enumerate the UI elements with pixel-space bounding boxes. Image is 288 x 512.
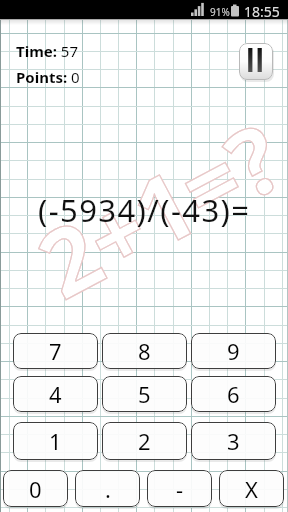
staticText: 3 — [227, 426, 240, 456]
staticText: Time: 57 — [16, 41, 78, 61]
button[interactable] — [239, 43, 273, 80]
button[interactable]: 1 — [13, 422, 98, 460]
staticText: 9 — [227, 336, 240, 366]
button[interactable]: 7 — [13, 333, 98, 369]
staticText: 2+1=? — [16, 93, 288, 326]
button[interactable]: 0 — [3, 470, 68, 507]
staticText: 4 — [49, 379, 62, 409]
button[interactable]: . — [75, 470, 140, 507]
staticText: Points: 0 — [16, 67, 80, 87]
button[interactable]: - — [147, 470, 212, 507]
staticText: . — [105, 474, 111, 504]
staticText: (-5934)/(-43)= — [38, 189, 251, 229]
staticText: 18:55 — [244, 2, 280, 21]
staticText: 2 — [138, 426, 151, 456]
staticText: - — [176, 474, 184, 504]
button[interactable]: X — [219, 470, 284, 507]
staticText: 5 — [138, 379, 151, 409]
staticText: 1 — [49, 426, 62, 456]
staticText: 2+1=? — [16, 93, 288, 326]
button[interactable]: 6 — [191, 376, 276, 412]
button[interactable]: 3 — [191, 422, 276, 460]
button[interactable]: 5 — [102, 376, 187, 412]
staticText: 91% — [210, 5, 230, 19]
button[interactable]: 8 — [102, 333, 187, 369]
staticText: 7 — [49, 336, 62, 366]
staticText: 0 — [29, 474, 42, 504]
staticText: 8 — [138, 336, 151, 366]
button[interactable]: 9 — [191, 333, 276, 369]
button[interactable]: 4 — [13, 376, 98, 412]
button[interactable]: 2 — [102, 422, 187, 460]
staticText: X — [245, 474, 258, 504]
staticText: 6 — [227, 379, 240, 409]
